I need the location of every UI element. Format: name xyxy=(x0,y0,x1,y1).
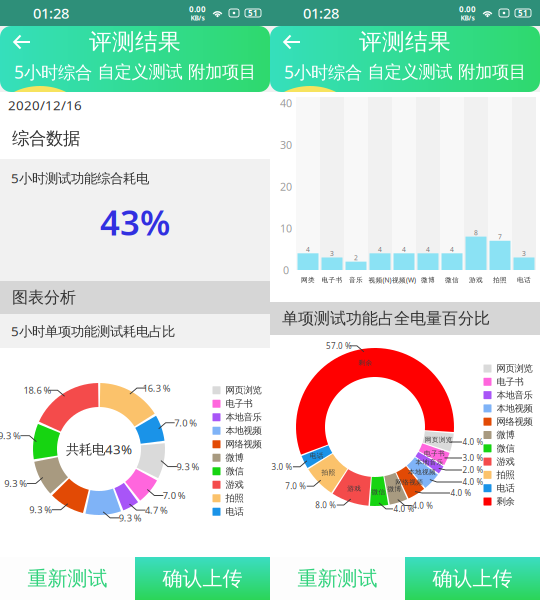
staticText: 4.0 % xyxy=(450,488,471,498)
staticText: 51 xyxy=(518,8,528,18)
staticText: 电话 xyxy=(496,482,514,494)
staticText: 网络视频 xyxy=(395,478,423,486)
staticText: 本地音乐 xyxy=(225,411,261,423)
button[interactable]: 自定义测试 xyxy=(97,61,182,83)
staticText: 拍照 xyxy=(496,469,514,481)
staticText: KB/s xyxy=(190,13,204,22)
staticText: 4.0 % xyxy=(393,504,414,514)
staticText: 电子书 xyxy=(225,398,252,409)
staticText: 0.00 xyxy=(189,4,206,14)
staticText: 游戏 xyxy=(225,479,243,490)
staticText: 附加项目 xyxy=(188,61,256,83)
staticText: 5小时单项功能测试耗电占比 xyxy=(11,322,175,340)
staticText: 综合数据 xyxy=(12,128,80,149)
staticText: 游戏 xyxy=(496,456,514,467)
staticText: 5小时测试功能综合耗电 xyxy=(11,169,149,187)
staticText: 电子书 xyxy=(496,376,523,388)
staticText: 10 xyxy=(280,221,292,235)
staticText: 微博 xyxy=(496,429,514,441)
button[interactable]: 附加项目 xyxy=(458,61,526,83)
staticText: 确认上传 xyxy=(162,566,242,591)
staticText: 5小时综合 xyxy=(284,60,362,83)
staticText: 18.6 % xyxy=(24,384,52,396)
staticText: 4.0 % xyxy=(462,477,483,487)
staticText: 剩余 xyxy=(496,496,514,507)
staticText: 附加项目 xyxy=(458,61,526,83)
staticText: 2 xyxy=(354,253,358,262)
staticText: 评测结果 xyxy=(359,28,451,56)
staticText: 本地音乐 xyxy=(415,458,443,466)
staticText: 确认上传 xyxy=(432,566,512,591)
staticText: 本地视频 xyxy=(225,425,261,436)
staticText: 游戏 xyxy=(469,276,483,284)
staticText: 7.0 % xyxy=(163,489,186,502)
staticText: 7 xyxy=(498,232,502,241)
button[interactable]: 5小时综合 xyxy=(14,60,92,83)
staticText: 网页浏览 xyxy=(496,363,532,374)
staticText: 网页浏览 xyxy=(225,384,261,396)
staticText: KB/s xyxy=(460,13,474,22)
staticText: 微信 xyxy=(496,443,514,454)
staticText: 微信 xyxy=(371,488,385,496)
staticText: 网页浏览 xyxy=(425,436,453,444)
staticText: 2.0 % xyxy=(462,465,483,475)
staticText: 电子书 xyxy=(321,276,342,284)
staticText: 重新测试 xyxy=(297,566,377,591)
button[interactable]: 重新测试 xyxy=(0,557,135,600)
staticText: 评测结果 xyxy=(89,28,181,56)
staticText: 20 xyxy=(280,179,292,194)
staticText: 共耗电43% xyxy=(66,440,132,458)
staticText: 5小时综合 xyxy=(14,60,92,83)
staticText: 图表分析 xyxy=(12,288,76,307)
staticText: 3 xyxy=(330,249,334,258)
staticText: 本地视频 xyxy=(496,403,532,414)
staticText: 3 xyxy=(522,249,526,258)
staticText: 9.3 % xyxy=(176,460,199,473)
staticText: 剩余 xyxy=(358,359,372,367)
staticText: 4.0 % xyxy=(412,500,433,511)
staticText: 2020/12/16 xyxy=(8,96,82,114)
button[interactable]: 确认上传 xyxy=(135,557,270,600)
staticText: 0.00 xyxy=(459,4,476,14)
staticText: 16.3 % xyxy=(143,382,171,394)
staticText: 57.0 % xyxy=(326,340,352,351)
staticText: 01:28 xyxy=(303,3,339,23)
button[interactable]: 5小时综合 xyxy=(284,60,362,83)
staticText: 单项测试功能占全电量百分比 xyxy=(282,309,490,328)
staticText: 电话 xyxy=(225,506,243,517)
staticText: 电子书 xyxy=(424,449,445,457)
staticText: 4.0 % xyxy=(462,437,483,447)
staticText: 8.0 % xyxy=(315,500,336,510)
button[interactable]: 重新测试 xyxy=(270,557,405,600)
button[interactable]: Back xyxy=(270,26,314,58)
staticText: 4 xyxy=(426,245,430,254)
staticText: 9.3 % xyxy=(0,429,21,442)
staticText: 43% xyxy=(100,199,170,245)
staticText: 4 xyxy=(378,245,382,254)
staticText: 9.3 % xyxy=(29,503,52,516)
staticText: 7.0 % xyxy=(174,417,197,429)
staticText: 微信 xyxy=(445,276,459,284)
staticText: 9.3 % xyxy=(4,477,27,490)
staticText: 51 xyxy=(248,8,258,18)
staticText: 01:28 xyxy=(33,3,69,23)
staticText: 4.7 % xyxy=(145,504,168,516)
button[interactable]: 自定义测试 xyxy=(367,61,452,83)
staticText: 自定义测试 xyxy=(367,61,452,83)
staticText: 40 xyxy=(280,96,292,110)
staticText: 网络视频 xyxy=(496,416,532,427)
staticText: 拍照 xyxy=(322,468,336,477)
staticText: 微博 xyxy=(225,452,243,463)
staticText: 微博 xyxy=(387,485,401,493)
staticText: 重新测试 xyxy=(27,566,107,591)
staticText: 微信 xyxy=(225,465,243,477)
staticText: 8 xyxy=(474,228,478,237)
button[interactable]: 确认上传 xyxy=(405,557,540,600)
button[interactable]: Back xyxy=(0,26,44,58)
staticText: 电话 xyxy=(310,452,324,460)
staticText: 4 xyxy=(402,245,406,254)
staticText: 音乐 xyxy=(349,276,363,284)
staticText: 拍照 xyxy=(225,492,243,504)
button[interactable]: 附加项目 xyxy=(188,61,256,83)
staticText: 自定义测试 xyxy=(97,61,182,83)
